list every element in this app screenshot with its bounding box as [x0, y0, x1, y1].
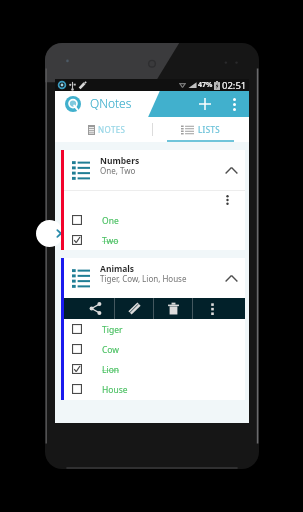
button[interactable]: More options — [220, 91, 248, 117]
button[interactable]: Share — [76, 298, 114, 319]
staticText: Tiger — [102, 324, 123, 336]
staticText: Animals — [100, 263, 135, 275]
staticText: LISTS — [198, 124, 221, 135]
staticText: One — [102, 215, 119, 227]
button[interactable]: One — [64, 210, 245, 230]
button[interactable]: More options — [220, 190, 234, 210]
button[interactable]: Open navigation drawer — [36, 220, 63, 247]
staticText: Cow — [102, 344, 120, 356]
button[interactable]: Collapse — [219, 150, 243, 190]
button[interactable]: Tiger — [64, 319, 245, 339]
staticText: Numbers — [100, 155, 140, 167]
button[interactable]: Two — [64, 230, 245, 250]
staticText: 02:51 — [222, 79, 247, 91]
button[interactable]: LISTS — [152, 117, 249, 142]
button[interactable]: Lion — [64, 359, 245, 379]
button[interactable]: Numbers — [64, 150, 245, 190]
staticText: One, Two — [100, 165, 136, 176]
button[interactable]: House — [64, 379, 245, 399]
staticText: Tiger, Cow, Lion, House — [100, 273, 187, 284]
button[interactable]: Edit — [115, 298, 153, 319]
button[interactable]: Cow — [64, 339, 245, 359]
button[interactable]: Add — [190, 91, 220, 117]
button[interactable]: NOTES — [55, 117, 152, 142]
staticText: House — [102, 384, 128, 396]
button[interactable]: More options — [193, 298, 231, 319]
button[interactable]: Animals — [64, 258, 245, 298]
staticText: 47% — [198, 80, 213, 90]
button[interactable]: Delete — [154, 298, 192, 319]
staticText: Two — [102, 235, 119, 247]
staticText: NOTES — [98, 124, 126, 135]
staticText: QNotes — [90, 95, 132, 111]
staticText: Lion — [102, 364, 120, 376]
button[interactable]: Collapse — [219, 258, 243, 298]
